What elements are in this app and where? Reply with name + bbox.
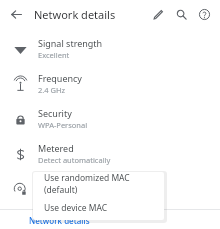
button[interactable]: Back bbox=[4, 2, 28, 26]
staticText: Metered bbox=[38, 142, 74, 154]
staticText: Security bbox=[38, 107, 72, 119]
staticText: Use device MAC bbox=[44, 202, 108, 214]
button[interactable]: Metered bbox=[0, 136, 220, 171]
button[interactable]: Privacy MAC bbox=[0, 171, 220, 206]
button[interactable]: Help bbox=[194, 4, 214, 24]
staticText: Frequency bbox=[38, 72, 82, 84]
button[interactable]: Use device MAC bbox=[33, 196, 164, 220]
staticText: Excellent bbox=[38, 50, 70, 60]
button[interactable]: Security bbox=[0, 101, 220, 136]
staticText: Use randomized MAC (default) bbox=[44, 172, 164, 196]
staticText: 2.4 GHz bbox=[38, 85, 66, 95]
staticText: Signal strength bbox=[38, 37, 103, 49]
staticText: WPA-Personal bbox=[38, 120, 88, 130]
button[interactable]: Use randomized MAC (default) bbox=[33, 172, 164, 196]
button[interactable]: Edit bbox=[148, 4, 168, 24]
button[interactable]: Frequency bbox=[0, 66, 220, 101]
button[interactable]: Search bbox=[171, 4, 191, 24]
staticText: Network details bbox=[29, 215, 90, 226]
staticText: Detect automatically bbox=[38, 155, 111, 165]
staticText: Network details bbox=[34, 7, 116, 22]
button[interactable]: Signal strength bbox=[0, 31, 220, 66]
